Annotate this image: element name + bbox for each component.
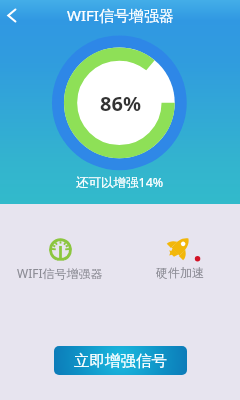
staticText: 立即增强信号 [74, 351, 167, 371]
button[interactable]: Back [0, 4, 23, 27]
button[interactable]: 硬件加速 [120, 235, 240, 280]
staticText: 硬件加速 [156, 265, 204, 280]
staticText: 还可以增强14% [76, 174, 164, 188]
button[interactable]: WIFI信号增强器 [0, 235, 120, 281]
staticText: WIFI信号增强器 [17, 265, 103, 281]
button[interactable]: 立即增强信号 [54, 346, 187, 375]
staticText: 86% [100, 90, 141, 117]
staticText: WIFI信号增强器 [67, 5, 174, 25]
